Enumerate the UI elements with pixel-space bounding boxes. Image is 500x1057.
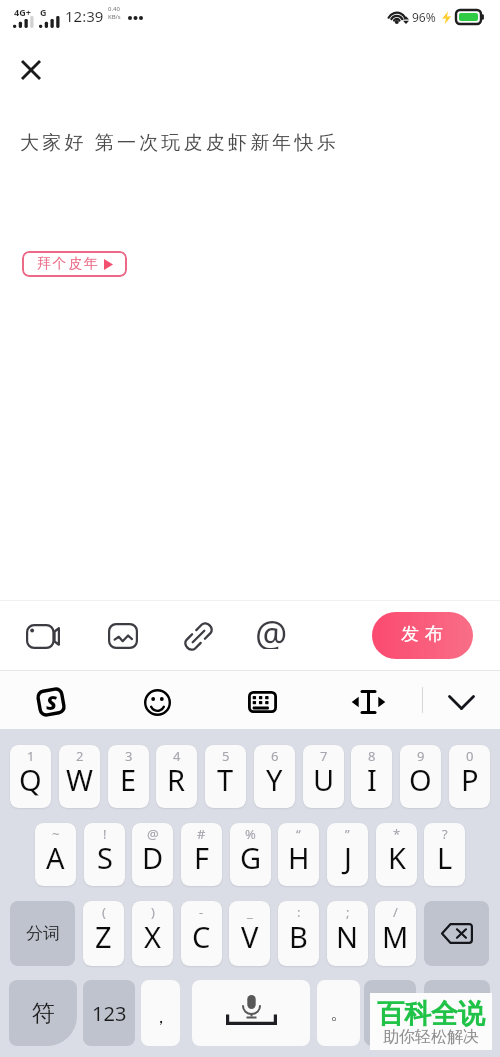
staticText: 大家好 第一次玩皮皮虾新年快乐 [20,129,339,155]
staticText: 1 [27,747,35,765]
staticText: ; [346,903,350,921]
button[interactable]: Close [10,50,50,90]
button[interactable]: Image [103,616,143,656]
button[interactable]: ) [132,901,173,966]
button[interactable]: # [181,823,222,886]
button[interactable]: 发 布 [372,612,473,659]
staticText: 助你轻松解决 [383,1027,479,1047]
staticText: O [409,760,432,799]
staticText: S [97,838,113,877]
button[interactable]: Hide keyboard [441,682,481,722]
button[interactable]: 8 [351,745,392,808]
staticText: Q [19,760,42,799]
button[interactable]: 7 [303,745,344,808]
staticText: Z [95,917,112,956]
button[interactable]: ~ [35,823,76,886]
button[interactable]: Input method [31,682,71,722]
staticText: T [217,760,234,799]
staticText: J [344,838,352,877]
button[interactable]: Enter [424,980,490,1046]
staticText: 拜个皮年 [37,255,100,273]
button[interactable]: 0 [449,745,490,808]
staticText: ? [442,825,448,843]
button[interactable]: ! [84,823,125,886]
button[interactable]: ( [83,901,124,966]
staticText: ~ [52,825,60,843]
staticText: Y [266,760,283,799]
button[interactable]: - [181,901,222,966]
staticText: 符 [32,999,55,1028]
staticText: @ [255,609,288,649]
staticText: 4 [173,747,181,765]
staticText: 12:39 [65,6,104,26]
button[interactable]: % [230,823,271,886]
button[interactable]: : [278,901,319,966]
button[interactable]: Backspace [424,901,489,966]
staticText: 2 [76,747,84,765]
staticText: 0 [466,747,474,765]
staticText: W [66,760,93,799]
button[interactable]: 1 [10,745,51,808]
button[interactable]: Period [317,980,360,1046]
button[interactable]: ; [327,901,368,966]
button[interactable]: Keyboard [242,682,282,722]
staticText: ! [103,825,107,843]
button[interactable]: Move cursor [348,682,388,722]
button[interactable]: 4 [156,745,197,808]
button[interactable]: @ [132,823,173,886]
staticText: I [367,760,377,799]
button[interactable]: 3 [108,745,149,808]
button[interactable]: * [376,823,417,886]
staticText: G [240,838,262,877]
staticText: 4G+ [14,6,31,18]
button[interactable]: Symbols [364,980,416,1046]
button[interactable]: 分词 [10,901,75,966]
button[interactable]: _ [229,901,270,966]
button[interactable]: Mention [250,616,290,656]
staticText: D [142,838,164,877]
button[interactable]: 符 [9,980,77,1046]
staticText: P [461,760,479,799]
staticText: / [393,903,398,921]
button[interactable]: 123 [83,980,135,1046]
staticText: # [197,825,206,843]
button[interactable]: Link [178,616,218,656]
staticText: “ [296,825,301,843]
staticText: E [120,760,137,799]
button[interactable]: / [375,901,416,966]
staticText: 8 [368,747,376,765]
button[interactable]: ” [327,823,368,886]
button[interactable]: 6 [254,745,295,808]
staticText: U [313,760,335,799]
staticText: ” [345,825,350,843]
button[interactable]: 9 [400,745,441,808]
button[interactable]: Emoji [137,682,177,722]
staticText: % [245,825,256,843]
staticText: S [46,689,57,716]
staticText: 6 [271,747,279,765]
button[interactable]: 5 [205,745,246,808]
staticText: @ [147,825,159,843]
button[interactable]: 2 [59,745,100,808]
button[interactable]: Video [23,616,63,656]
staticText: ( [102,903,106,921]
staticText: R [167,760,186,799]
staticText: _ [247,903,253,921]
staticText: F [194,838,210,877]
staticText: B [289,917,308,956]
button[interactable]: 拜个皮年 [22,251,127,277]
button[interactable]: “ [278,823,319,886]
staticText: 0.40 [108,5,120,13]
button[interactable]: Comma [141,980,180,1046]
staticText: N [336,917,359,956]
staticText: 9 [417,747,425,765]
staticText: ) [151,903,155,921]
staticText: 5 [222,747,230,765]
staticText: K [388,838,406,877]
button[interactable]: Space [192,980,310,1046]
button[interactable]: ? [424,823,465,886]
staticText: : [297,903,301,921]
staticText: KB/s [108,13,121,21]
staticText: 。 [330,1002,348,1025]
staticText: ， [152,1006,170,1029]
